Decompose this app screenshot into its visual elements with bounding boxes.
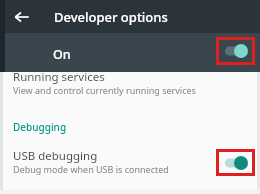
staticText: USB debugging	[13, 148, 98, 164]
staticText: On	[53, 46, 71, 63]
staticText: Debug mode when USB is connected	[13, 163, 169, 175]
button[interactable]: Running services	[0, 73, 260, 100]
staticText: Debugging	[13, 120, 67, 134]
button[interactable]: Back	[10, 5, 34, 29]
button[interactable]: Toggle	[225, 44, 247, 58]
button[interactable]: On	[0, 33, 260, 72]
button[interactable]: Toggle	[225, 156, 247, 170]
staticText: Developer options	[54, 8, 168, 26]
staticText: Running services	[13, 69, 105, 85]
staticText: View and control currently running servi…	[13, 84, 196, 96]
button[interactable]: USB debugging	[0, 148, 260, 182]
